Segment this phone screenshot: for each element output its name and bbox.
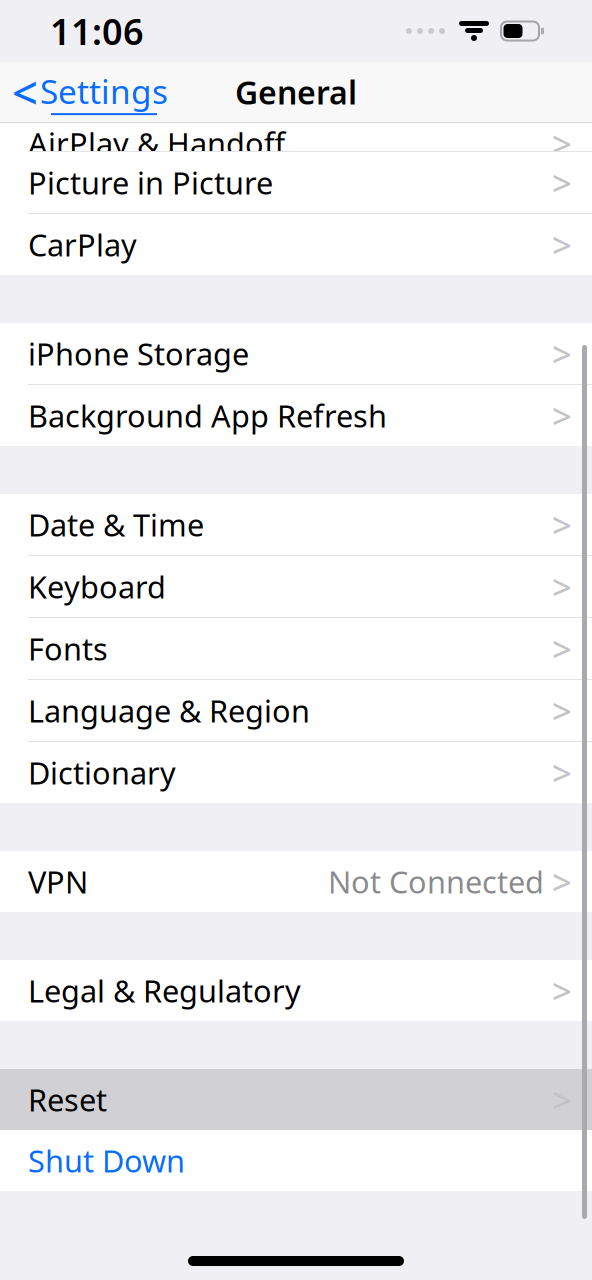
staticText: VPN (28, 861, 88, 902)
staticText: > (552, 967, 572, 1013)
staticText: > (552, 330, 572, 376)
staticText: > (552, 159, 572, 205)
button[interactable]: iPhone Storage (0, 323, 592, 384)
button[interactable]: VPN (0, 851, 592, 912)
button[interactable]: Keyboard (0, 556, 592, 617)
staticText: > (552, 858, 572, 904)
staticText: > (552, 221, 572, 267)
staticText: > (552, 1076, 572, 1122)
button[interactable]: Picture in Picture (0, 152, 592, 213)
staticText: General (235, 71, 357, 113)
staticText: 11:06 (50, 7, 144, 55)
staticText: > (552, 749, 572, 795)
button[interactable]: Legal & Regulatory (0, 960, 592, 1021)
staticText: Language & Region (28, 690, 310, 731)
button[interactable]: Language & Region (0, 680, 592, 741)
staticText: Keyboard (28, 566, 166, 607)
staticText: Date & Time (28, 504, 204, 545)
staticText: Legal & Regulatory (28, 970, 301, 1011)
staticText: Settings (40, 69, 168, 113)
button[interactable]: Shut Down (0, 1130, 592, 1191)
staticText: AirPlay & Handoff (28, 123, 285, 164)
button[interactable]: < (0, 56, 168, 128)
button[interactable]: Dictionary (0, 742, 592, 803)
staticText: Background App Refresh (28, 395, 387, 436)
button[interactable]: Reset (0, 1069, 592, 1130)
staticText: > (552, 392, 572, 438)
staticText: CarPlay (28, 224, 137, 265)
button[interactable]: Background App Refresh (0, 385, 592, 446)
button[interactable]: CarPlay (0, 214, 592, 275)
staticText: > (552, 120, 572, 166)
staticText: Not Connected (328, 861, 544, 902)
staticText: Shut Down (28, 1140, 185, 1181)
staticText: iPhone Storage (28, 333, 249, 374)
staticText: > (552, 563, 572, 609)
button[interactable]: Date & Time (0, 494, 592, 555)
staticText: Reset (28, 1079, 107, 1120)
staticText: < (12, 62, 38, 122)
staticText: > (552, 625, 572, 671)
staticText: > (552, 687, 572, 733)
button[interactable]: Fonts (0, 618, 592, 679)
staticText: Fonts (28, 628, 108, 669)
staticText: Picture in Picture (28, 162, 273, 203)
staticText: Dictionary (28, 752, 176, 793)
staticText: > (552, 501, 572, 547)
